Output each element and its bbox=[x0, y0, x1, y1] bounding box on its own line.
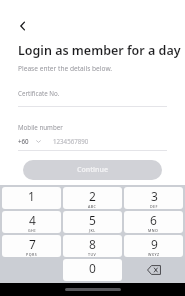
staticText: Login as member for a day bbox=[18, 42, 181, 59]
button[interactable]: 0 bbox=[63, 259, 122, 281]
button[interactable]: Continue bbox=[23, 160, 162, 180]
staticText: 6 bbox=[150, 212, 157, 228]
staticText: GHI bbox=[28, 228, 36, 233]
button[interactable]: 7 bbox=[2, 235, 61, 257]
button[interactable]: 9 bbox=[124, 235, 183, 257]
staticText: +60 bbox=[18, 137, 29, 145]
staticText: PQRS bbox=[26, 252, 38, 257]
staticText: TUV bbox=[88, 252, 97, 257]
button[interactable]: 8 bbox=[63, 235, 122, 257]
staticText: 8 bbox=[89, 236, 96, 252]
button[interactable]: 6 bbox=[124, 211, 183, 233]
staticText: 5 bbox=[89, 212, 96, 228]
staticText: 7 bbox=[29, 236, 36, 252]
staticText: 2 bbox=[89, 188, 96, 204]
staticText: 4 bbox=[29, 212, 36, 228]
button[interactable]: 5 bbox=[63, 211, 122, 233]
staticText: JKL bbox=[89, 228, 96, 233]
staticText: Please enter the details below. bbox=[18, 64, 113, 73]
staticText: WXYZ bbox=[148, 252, 160, 257]
button[interactable]: 2 bbox=[63, 187, 122, 209]
staticText: 1234567890 bbox=[53, 137, 89, 145]
staticText: Mobile number bbox=[18, 123, 63, 131]
staticText: ABC bbox=[88, 204, 97, 209]
staticText: 0 bbox=[89, 260, 96, 276]
staticText: DEF bbox=[150, 204, 158, 209]
button[interactable]: 3 bbox=[124, 187, 183, 209]
staticText: Certificate No. bbox=[18, 89, 60, 97]
staticText: 9 bbox=[151, 236, 158, 252]
button[interactable]: +60 bbox=[18, 137, 41, 145]
button[interactable]: Backspace bbox=[124, 259, 183, 281]
button[interactable]: Back bbox=[14, 17, 32, 35]
staticText: 3 bbox=[151, 188, 158, 204]
staticText: 1 bbox=[28, 188, 35, 204]
staticText: MNO bbox=[148, 228, 159, 233]
staticText: Continue bbox=[77, 165, 109, 175]
button[interactable]: 4 bbox=[2, 211, 61, 233]
button[interactable]: 1 bbox=[2, 187, 61, 209]
